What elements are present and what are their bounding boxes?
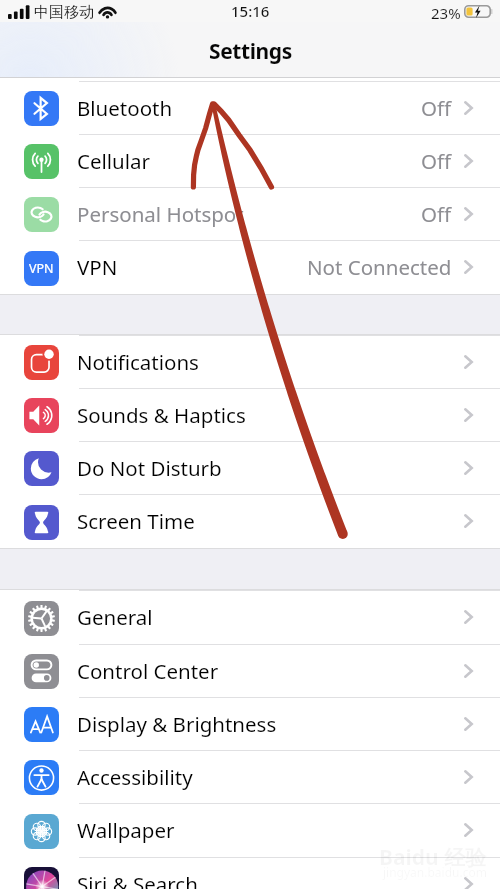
staticText: 15:16 (231, 1, 270, 21)
staticText: Settings (209, 37, 292, 66)
button[interactable]: Control Center (0, 644, 500, 697)
button[interactable]: Personal Hotspot (0, 187, 500, 240)
button[interactable]: Notifications (0, 335, 500, 388)
staticText: Siri & Search (77, 870, 198, 889)
staticText: General (77, 603, 153, 631)
staticText: Accessibility (77, 763, 193, 791)
staticText: 23% (431, 3, 461, 23)
staticText: Do Not Disturb (77, 454, 222, 482)
staticText: Personal Hotspot (77, 200, 244, 228)
button[interactable]: Do Not Disturb (0, 441, 500, 494)
staticText: Baidu 经验 (379, 843, 487, 872)
staticText: Off (421, 200, 452, 228)
other: annotation arrow (0, 0, 500, 889)
button[interactable]: Sounds & Haptics (0, 388, 500, 441)
staticText: Notifications (77, 348, 199, 376)
button[interactable]: Cellular (0, 134, 500, 187)
button[interactable]: General (0, 590, 500, 644)
staticText: Cellular (77, 147, 151, 175)
staticText: Bluetooth (77, 94, 173, 122)
staticText: Control Center (77, 657, 219, 685)
staticText: 中国移动 (34, 3, 94, 22)
staticText: VPN (29, 260, 54, 277)
button[interactable]: Siri & Search (0, 857, 500, 889)
staticText: Off (421, 94, 452, 122)
staticText: jingyan.baidu.com (383, 864, 487, 880)
button[interactable]: Screen Time (0, 494, 500, 548)
staticText: Not Connected (307, 253, 452, 281)
staticText: VPN (77, 253, 118, 281)
staticText: Off (421, 147, 452, 175)
staticText: Sounds & Haptics (77, 401, 246, 429)
button[interactable]: Display & Brightness (0, 697, 500, 750)
button[interactable]: Accessibility (0, 750, 500, 803)
staticText: Wallpaper (77, 816, 175, 844)
staticText: Display & Brightness (77, 710, 277, 738)
button[interactable]: VPN (0, 240, 500, 294)
staticText: Screen Time (77, 507, 195, 535)
button[interactable]: Wallpaper (0, 803, 500, 857)
button[interactable]: Bluetooth (0, 81, 500, 134)
